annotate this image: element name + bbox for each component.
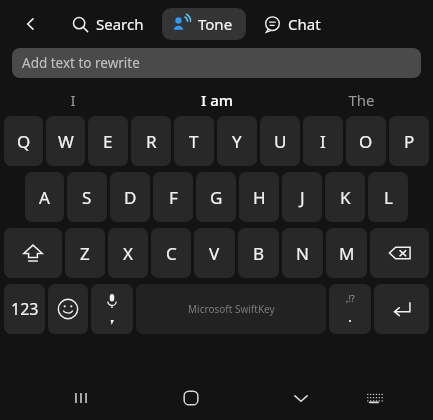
staticText: . bbox=[348, 306, 353, 326]
staticText: R bbox=[146, 130, 157, 153]
button[interactable]: Home bbox=[169, 376, 213, 420]
button[interactable]: Recents bbox=[59, 376, 103, 420]
button[interactable]: Space bbox=[136, 284, 326, 334]
button[interactable]: W bbox=[46, 116, 85, 166]
staticText: K bbox=[340, 186, 351, 209]
staticText: S bbox=[82, 186, 92, 209]
button[interactable]: B bbox=[238, 228, 279, 278]
button[interactable]: The bbox=[289, 83, 433, 116]
staticText: Chat bbox=[288, 14, 321, 34]
button[interactable]: Chat bbox=[260, 10, 325, 38]
button[interactable]: Period and punctuation bbox=[329, 284, 371, 334]
button[interactable]: I bbox=[303, 116, 343, 166]
staticText: The bbox=[348, 90, 375, 110]
staticText: E bbox=[103, 130, 113, 153]
button[interactable]: Switch keyboard bbox=[353, 376, 397, 420]
button[interactable]: X bbox=[108, 228, 148, 278]
staticText: H bbox=[253, 186, 266, 209]
staticText: D bbox=[124, 186, 137, 209]
button[interactable]: A bbox=[25, 172, 64, 222]
button[interactable]: G bbox=[196, 172, 236, 222]
button[interactable]: R bbox=[131, 116, 171, 166]
button[interactable]: P bbox=[389, 116, 429, 166]
button[interactable]: Backspace bbox=[370, 228, 429, 278]
staticText: V bbox=[209, 242, 220, 265]
button[interactable]: C bbox=[151, 228, 191, 278]
button[interactable]: Tone bbox=[162, 8, 246, 40]
staticText: O bbox=[359, 130, 373, 153]
button[interactable]: Search bbox=[68, 10, 148, 38]
button[interactable]: S bbox=[67, 172, 107, 222]
button[interactable]: 123 bbox=[4, 284, 45, 334]
button[interactable]: L bbox=[368, 172, 408, 222]
button[interactable]: Shift bbox=[4, 228, 62, 278]
button[interactable]: Back bbox=[18, 11, 44, 37]
button[interactable]: V bbox=[194, 228, 235, 278]
button[interactable]: Q bbox=[4, 116, 43, 166]
button[interactable]: T bbox=[174, 116, 214, 166]
staticText: ,!? bbox=[346, 292, 355, 304]
staticText: Q bbox=[17, 130, 31, 153]
staticText: W bbox=[58, 130, 74, 153]
staticText: N bbox=[296, 242, 309, 265]
button[interactable]: U bbox=[260, 116, 300, 166]
button[interactable]: Hide keyboard bbox=[279, 376, 323, 420]
staticText: Y bbox=[232, 130, 242, 153]
button[interactable]: F bbox=[153, 172, 193, 222]
staticText: C bbox=[166, 242, 177, 265]
staticText: A bbox=[39, 186, 50, 209]
button[interactable]: K bbox=[325, 172, 365, 222]
button[interactable]: Y bbox=[217, 116, 257, 166]
staticText: L bbox=[384, 186, 393, 209]
staticText: I bbox=[70, 90, 76, 110]
staticText: T bbox=[189, 130, 199, 153]
staticText: I am bbox=[201, 90, 233, 110]
staticText: G bbox=[210, 186, 223, 209]
staticText: I bbox=[320, 130, 326, 153]
staticText: J bbox=[300, 186, 305, 209]
button[interactable]: D bbox=[110, 172, 150, 222]
button[interactable]: H bbox=[239, 172, 279, 222]
staticText: Microsoft SwiftKey bbox=[188, 302, 275, 316]
staticText: P bbox=[404, 130, 415, 153]
staticText: M bbox=[339, 242, 355, 265]
button[interactable]: N bbox=[282, 228, 323, 278]
staticText: U bbox=[274, 130, 287, 153]
button[interactable]: I am bbox=[145, 83, 289, 116]
button[interactable]: M bbox=[326, 228, 367, 278]
staticText: Search bbox=[96, 14, 144, 34]
staticText: F bbox=[169, 186, 178, 209]
staticText: Add text to rewrite bbox=[22, 54, 140, 72]
staticText: Tone bbox=[198, 14, 233, 34]
button[interactable]: Enter bbox=[374, 284, 429, 334]
button[interactable]: Voice input bbox=[91, 284, 133, 334]
button[interactable]: J bbox=[282, 172, 322, 222]
button[interactable]: I bbox=[0, 83, 145, 116]
staticText: 123 bbox=[11, 298, 39, 320]
button[interactable]: Emoji bbox=[48, 284, 88, 334]
staticText: Z bbox=[80, 242, 90, 265]
staticText: X bbox=[123, 242, 133, 265]
button[interactable]: O bbox=[346, 116, 386, 166]
button[interactable]: Z bbox=[65, 228, 105, 278]
staticText: B bbox=[253, 242, 265, 265]
button[interactable]: Add text to rewrite bbox=[12, 48, 421, 78]
button[interactable]: E bbox=[88, 116, 128, 166]
